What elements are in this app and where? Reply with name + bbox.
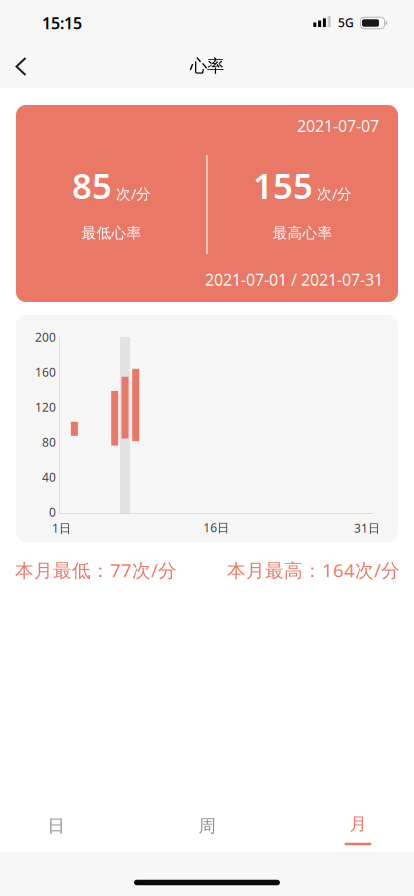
staticText: 本月最高：164次/分 [227,558,400,582]
staticText: 本月最低：77次/分 [15,558,177,582]
staticText: 40 [42,469,56,485]
button[interactable]: 日 [6,804,106,848]
staticText: 5G [338,14,354,30]
staticText: 160 [35,364,56,380]
staticText: 1日 [52,520,71,536]
staticText: 16日 [203,519,229,535]
staticText: 155 [253,162,313,208]
staticText: 0 [49,504,56,520]
staticText: 最高心率 [272,224,332,242]
staticText: 85 [72,162,112,208]
staticText: 15:15 [42,12,82,34]
staticText: 次/分 [116,184,151,203]
staticText: 最低心率 [81,224,141,242]
staticText: 200 [35,329,56,345]
staticText: 120 [35,399,56,415]
button[interactable]: 月 [308,804,408,848]
staticText: 31日 [354,520,380,536]
staticText: 80 [42,434,56,450]
staticText: 心率 [190,55,224,77]
staticText: 次/分 [317,184,352,203]
staticText: 日 [47,815,64,837]
staticText: 周 [198,815,215,837]
button[interactable]: 周 [157,804,257,848]
staticText: 月 [349,813,366,835]
staticText: 2021-07-07 [297,115,379,136]
button[interactable]: Back [4,51,48,81]
staticText: 2021-07-01 / 2021-07-31 [205,269,383,290]
